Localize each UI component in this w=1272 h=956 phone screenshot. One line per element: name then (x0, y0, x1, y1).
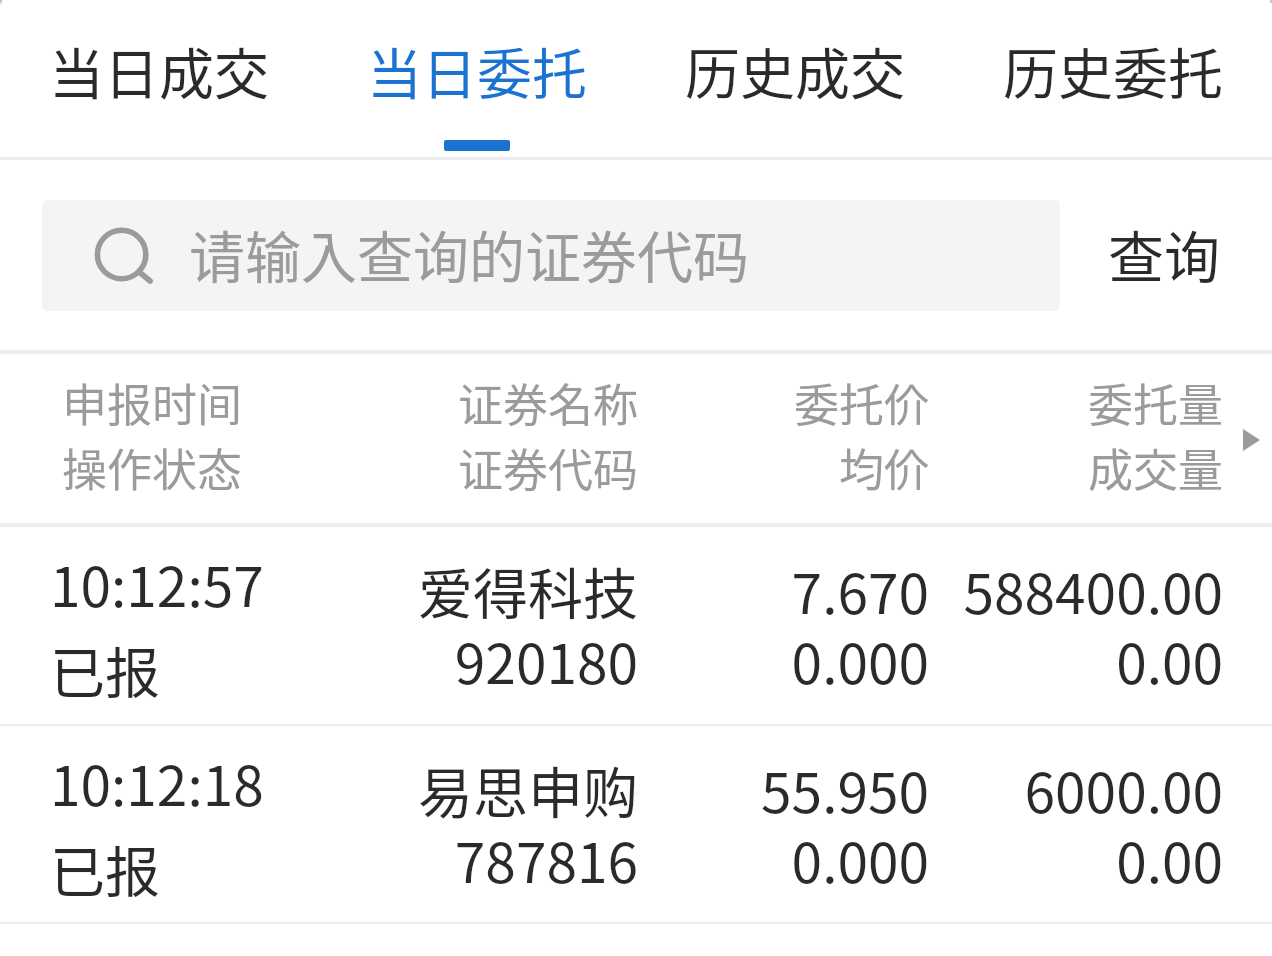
staticText: 6000.00 (929, 749, 1223, 829)
staticText: 成交量 (929, 435, 1223, 500)
staticText: 0.00 (929, 819, 1223, 899)
staticText: 操作状态 (62, 435, 243, 500)
button[interactable]: 当日委托 (318, 0, 636, 157)
staticText: 0.000 (638, 819, 929, 899)
staticText: 787816 (380, 819, 638, 899)
staticText: 证券代码 (380, 435, 638, 500)
staticText: 当日成交 (49, 30, 270, 110)
staticText: 请输入查询的证券代码 (189, 213, 749, 294)
staticText: 委托价 (638, 370, 929, 435)
staticText: 当日委托 (367, 30, 588, 110)
staticText: 已报 (50, 828, 161, 908)
staticText: 0.00 (929, 620, 1223, 700)
staticText: 均价 (638, 435, 929, 500)
button[interactable]: 10:12:57 (0, 527, 1272, 724)
staticText: 证券名称 (380, 370, 638, 435)
button[interactable]: 历史成交 (636, 0, 954, 157)
staticText: 已报 (50, 629, 161, 709)
other: Scroll table right (1243, 429, 1260, 451)
staticText: 申报时间 (62, 370, 243, 435)
staticText: 7.670 (638, 550, 929, 630)
staticText: 10:12:57 (50, 543, 264, 623)
staticText: 10:12:18 (50, 742, 264, 822)
staticText: 历史成交 (685, 30, 906, 110)
button[interactable]: 10:12:18 (0, 726, 1272, 922)
button[interactable]: 当日成交 (0, 0, 318, 157)
button[interactable]: 查询 (1108, 213, 1220, 294)
staticText: 55.950 (638, 749, 929, 829)
staticText: 易思申购 (380, 749, 638, 829)
button[interactable]: 历史委托 (954, 0, 1272, 157)
button[interactable]: 请输入查询的证券代码 (42, 200, 1060, 311)
staticText: 爱得科技 (380, 550, 638, 630)
staticText: 0.000 (638, 620, 929, 700)
staticText: 588400.00 (929, 550, 1223, 630)
staticText: 委托量 (929, 370, 1223, 435)
staticText: 920180 (380, 620, 638, 700)
staticText: 历史委托 (1003, 30, 1224, 110)
